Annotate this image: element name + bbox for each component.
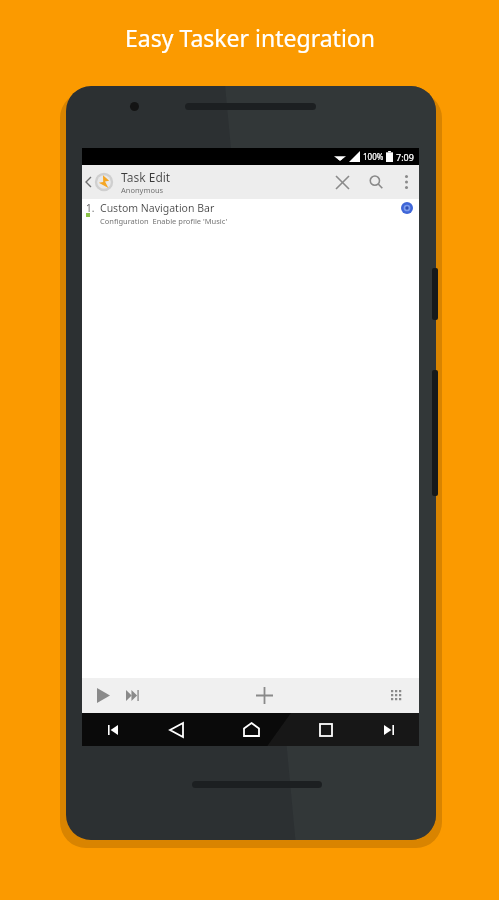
staticText: 7:09 xyxy=(396,151,414,163)
button[interactable]: Home xyxy=(209,713,293,746)
button[interactable]: Play xyxy=(88,678,118,713)
staticText: Configuration Enable profile 'Music' xyxy=(100,216,228,226)
button[interactable]: Close xyxy=(325,165,359,199)
button[interactable]: Search xyxy=(359,165,393,199)
button[interactable]: Grid menu xyxy=(380,678,414,713)
staticText: Easy Tasker integration xyxy=(125,22,375,53)
button[interactable]: Recents xyxy=(293,713,359,746)
button[interactable]: Previous track xyxy=(82,713,143,746)
button[interactable]: Action settings xyxy=(401,202,413,214)
button[interactable]: Step xyxy=(118,678,148,713)
button[interactable]: Back xyxy=(143,713,209,746)
button[interactable]: More options xyxy=(393,165,419,199)
staticText: 100% xyxy=(363,151,384,162)
button[interactable]: 1. xyxy=(82,199,419,232)
staticText: 1. xyxy=(86,201,95,215)
staticText: Custom Navigation Bar xyxy=(100,201,215,215)
button[interactable]: Back xyxy=(82,165,94,199)
button[interactable]: Next track xyxy=(359,713,419,746)
staticText: Anonymous xyxy=(121,185,164,195)
staticText: Task Edit xyxy=(121,169,171,185)
button[interactable]: Add action xyxy=(245,678,283,713)
